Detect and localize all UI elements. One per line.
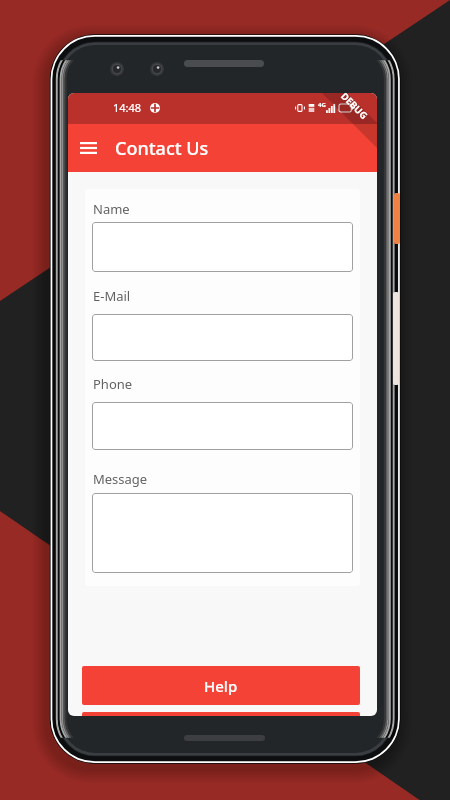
button[interactable]: Open navigation menu xyxy=(75,135,101,161)
button[interactable] xyxy=(92,314,353,361)
staticText: DEBUG xyxy=(338,93,371,122)
button[interactable] xyxy=(92,402,353,450)
button[interactable]: Help xyxy=(82,712,360,716)
button[interactable] xyxy=(92,222,353,272)
staticText: E-Mail xyxy=(93,287,131,305)
staticText: Contact Us xyxy=(115,136,209,161)
button[interactable] xyxy=(92,493,353,573)
button[interactable]: Help xyxy=(82,666,360,705)
staticText: Message xyxy=(93,470,148,488)
staticText: Name xyxy=(93,200,130,218)
staticText: Phone xyxy=(93,375,133,393)
staticText: 14:48 xyxy=(113,100,142,115)
staticText: 4G xyxy=(318,101,326,109)
staticText: Help xyxy=(204,676,238,696)
